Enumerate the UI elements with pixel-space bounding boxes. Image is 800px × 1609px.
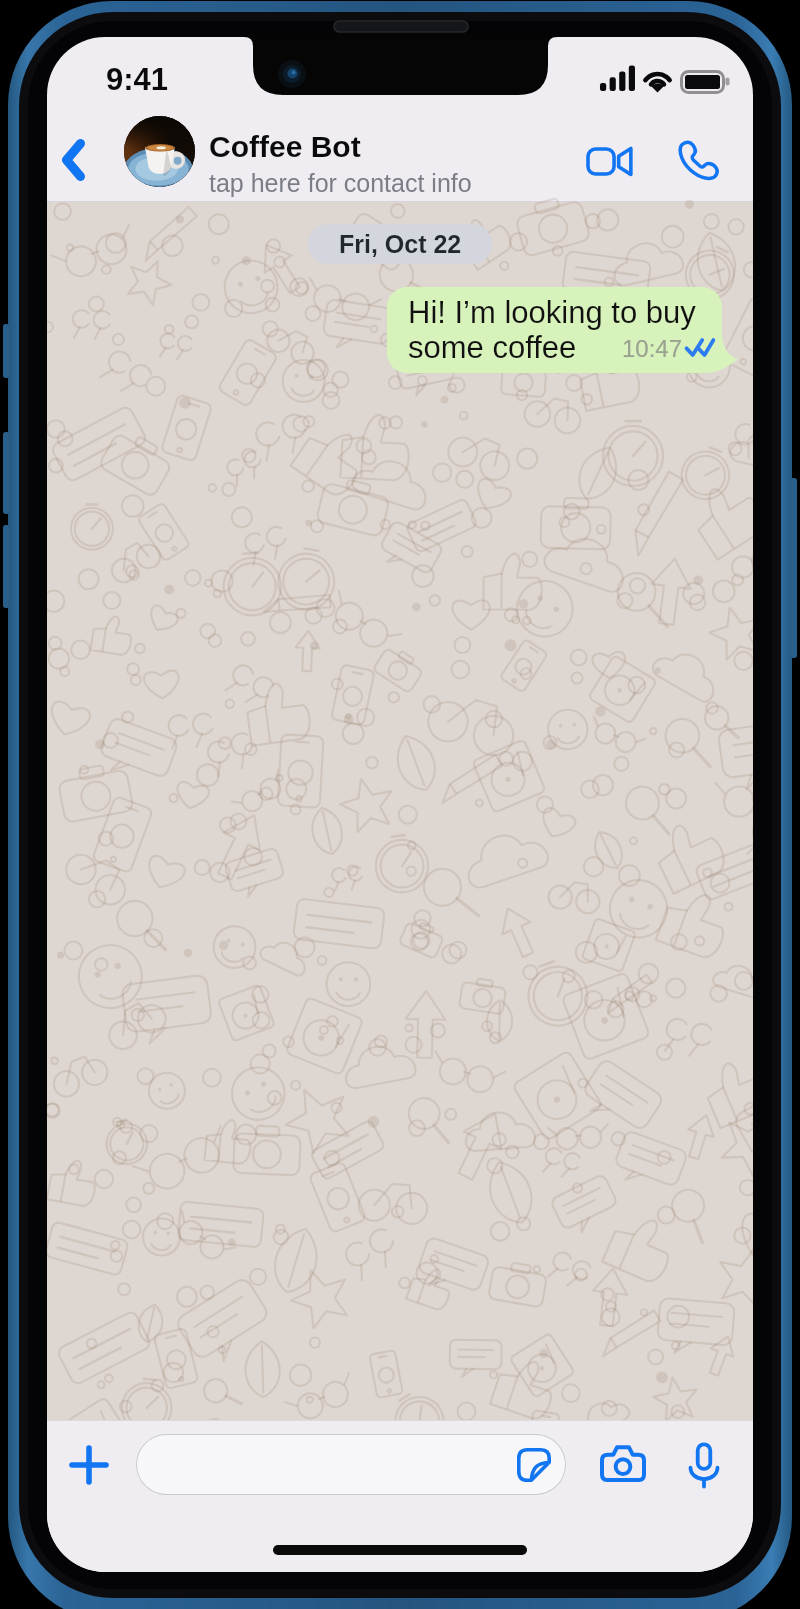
staticText: Fri, Oct 22: [339, 230, 462, 258]
button[interactable]: Fri, Oct 22: [308, 224, 492, 264]
button[interactable]: Coffee Bot: [124, 101, 472, 201]
button[interactable]: Voice message: [672, 1433, 736, 1497]
staticText: Coffee Bot: [209, 130, 361, 164]
button[interactable]: Attach: [57, 1433, 121, 1497]
staticText: 10:47: [622, 335, 683, 362]
staticText: Hi! I’m looking to buy: [408, 295, 696, 330]
staticText: some coffee: [408, 330, 577, 365]
button[interactable]: Hi! I’m looking to buy: [387, 287, 722, 373]
button[interactable]: Camera: [591, 1431, 655, 1495]
staticText: tap here for contact info: [209, 169, 472, 197]
button[interactable]: Call: [666, 127, 730, 191]
staticText: 9:41: [106, 62, 169, 97]
button[interactable]: Back: [47, 128, 105, 192]
button[interactable]: Video call: [577, 129, 641, 193]
button[interactable]: Message input field: [136, 1434, 566, 1495]
